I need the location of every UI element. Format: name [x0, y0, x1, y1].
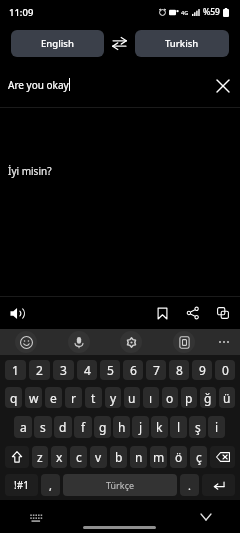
staticText: 7 [153, 362, 160, 378]
button[interactable]: 0 [215, 360, 235, 380]
staticText: %59 [203, 6, 220, 18]
button[interactable]: w [25, 387, 42, 408]
button[interactable]: English [11, 30, 104, 57]
button[interactable]: More options [211, 329, 237, 355]
button[interactable]: a [14, 416, 32, 438]
button[interactable]: r [65, 387, 82, 408]
button[interactable]: 7 [146, 360, 166, 380]
button[interactable]: 1 [5, 360, 26, 380]
staticText: ö [175, 449, 183, 465]
button[interactable]: z [32, 446, 48, 468]
button[interactable]: ı [143, 387, 159, 408]
button[interactable]: Collapse keyboard [196, 511, 216, 523]
button[interactable]: t [85, 387, 102, 408]
staticText: 5 [107, 362, 114, 378]
button[interactable]: y [105, 387, 121, 408]
button[interactable]: c [70, 446, 87, 468]
button[interactable]: Backspace [210, 446, 235, 468]
button[interactable]: ç [190, 446, 207, 468]
staticText: l [177, 419, 181, 435]
button[interactable]: Hide keyboard [27, 513, 45, 523]
button[interactable]: v [90, 446, 107, 468]
staticText: i [215, 419, 219, 435]
button[interactable]: m [150, 446, 167, 468]
button[interactable]: Türkçe [63, 474, 177, 496]
staticText: v [95, 449, 102, 465]
staticText: n [135, 449, 143, 465]
staticText: z [37, 449, 43, 465]
button[interactable]: 5 [100, 360, 120, 380]
staticText: b [115, 449, 123, 465]
button[interactable]: n [130, 446, 147, 468]
staticText: d [59, 419, 67, 435]
button[interactable]: Clipboard [171, 329, 197, 355]
button[interactable]: l [170, 416, 187, 438]
button[interactable]: b [110, 446, 127, 468]
button[interactable]: p [181, 387, 197, 408]
staticText: m [153, 449, 165, 465]
button[interactable]: Swap languages [104, 30, 135, 57]
button[interactable]: 3 [53, 360, 74, 380]
staticText: 3 [60, 362, 67, 378]
staticText: p [185, 390, 193, 406]
button[interactable]: u [124, 387, 140, 408]
button[interactable]: 2 [29, 360, 50, 380]
button[interactable]: Copy [210, 300, 236, 326]
staticText: ğ [204, 390, 212, 406]
button[interactable]: Emoji [13, 329, 39, 355]
button[interactable]: ş [189, 416, 206, 438]
button[interactable]: j [132, 416, 149, 438]
button[interactable]: ü [219, 387, 235, 408]
staticText: k [156, 419, 163, 435]
staticText: j [139, 419, 143, 435]
button[interactable]: d [54, 416, 72, 438]
staticText: t [91, 390, 96, 406]
staticText: h [118, 419, 126, 435]
button[interactable]: i [208, 416, 225, 438]
button[interactable]: !#1 [5, 474, 38, 496]
button[interactable]: h [113, 416, 130, 438]
button[interactable]: o [162, 387, 178, 408]
staticText: İyi misin? [8, 164, 52, 178]
staticText: 2 [36, 362, 43, 378]
button[interactable]: Voice input [66, 329, 92, 355]
button[interactable]: 4 [77, 360, 97, 380]
staticText: 6 [130, 362, 137, 378]
staticText: English [41, 37, 74, 50]
button[interactable]: Shift [5, 446, 29, 468]
staticText: 4G [181, 9, 189, 16]
button[interactable]: . [180, 474, 199, 496]
staticText: 4 [84, 362, 91, 378]
button[interactable]: Share [180, 300, 206, 326]
staticText: s [40, 419, 46, 435]
button[interactable]: f [74, 416, 92, 438]
staticText: q [10, 390, 18, 406]
staticText: ş [195, 419, 201, 435]
button[interactable]: q [5, 387, 22, 408]
button[interactable]: 9 [192, 360, 212, 380]
button[interactable]: ö [170, 446, 187, 468]
staticText: Are you okay [8, 78, 69, 92]
button[interactable]: Clear text [210, 73, 236, 99]
staticText: a [20, 419, 27, 435]
button[interactable]: ğ [200, 387, 216, 408]
button[interactable]: k [151, 416, 168, 438]
staticText: ü [223, 390, 231, 406]
button[interactable]: Save [149, 300, 175, 326]
staticText: , [49, 478, 52, 493]
button[interactable]: Turkish [135, 30, 229, 57]
button[interactable]: 8 [169, 360, 189, 380]
button[interactable]: Enter [202, 474, 235, 496]
button[interactable]: g [94, 416, 111, 438]
button[interactable]: Listen [4, 300, 30, 326]
button[interactable]: , [41, 474, 60, 496]
button[interactable]: s [34, 416, 52, 438]
staticText: c [76, 449, 82, 465]
button[interactable]: e [45, 387, 62, 408]
button[interactable]: 6 [123, 360, 143, 380]
staticText: y [110, 390, 117, 406]
staticText: u [128, 390, 136, 406]
staticText: w [29, 390, 39, 406]
button[interactable]: x [51, 446, 67, 468]
button[interactable]: Settings [118, 329, 144, 355]
